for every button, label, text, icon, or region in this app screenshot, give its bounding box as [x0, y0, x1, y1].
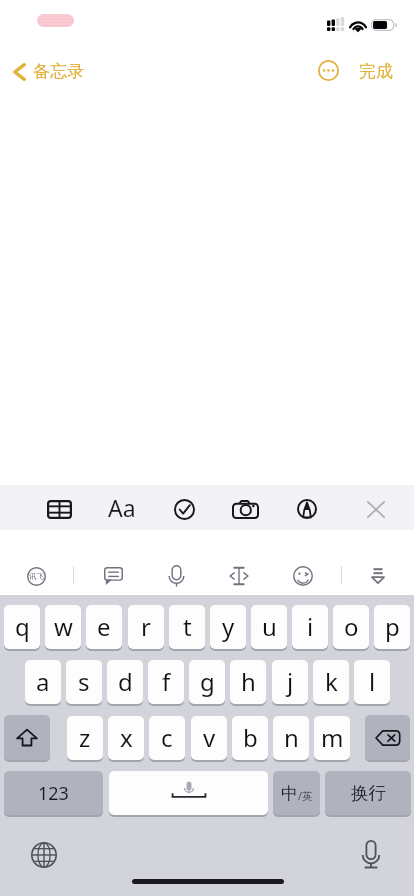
button[interactable]: z [67, 716, 103, 760]
staticText: Aa [108, 492, 136, 523]
staticText: k [325, 665, 338, 698]
button[interactable]: Hide keyboard [361, 559, 395, 593]
staticText: d [118, 665, 133, 698]
staticText: e [97, 610, 111, 643]
button[interactable]: Markup [289, 491, 325, 527]
staticText: j [287, 665, 294, 698]
staticText: a [36, 665, 50, 698]
button[interactable]: Chinese English toggle [273, 771, 320, 815]
staticText: o [344, 610, 359, 643]
staticText: u [262, 610, 277, 643]
staticText: l [369, 665, 376, 698]
button[interactable]: Move cursor [222, 559, 256, 593]
staticText: 123 [38, 781, 69, 806]
button[interactable]: q [4, 605, 40, 649]
button[interactable]: 完成 [355, 56, 397, 87]
button[interactable]: h [230, 660, 266, 704]
staticText: y [222, 610, 235, 643]
button[interactable]: Aa [104, 485, 140, 530]
button[interactable]: k [313, 660, 349, 704]
button[interactable]: Close keyboard [358, 491, 394, 527]
staticText: h [241, 665, 256, 698]
button[interactable]: s [66, 660, 102, 704]
button[interactable]: y [210, 605, 246, 649]
staticText: x [120, 721, 133, 754]
staticText: w [54, 610, 73, 643]
button[interactable]: c [149, 716, 185, 760]
button[interactable]: Emoji [286, 559, 320, 593]
button[interactable]: g [189, 660, 225, 704]
staticText: p [385, 610, 400, 643]
button[interactable]: Shift [4, 715, 50, 760]
staticText: n [284, 721, 299, 754]
button[interactable]: x [108, 716, 144, 760]
button[interactable]: r [128, 605, 164, 649]
button[interactable]: i [292, 605, 328, 649]
staticText: i [307, 610, 314, 643]
button[interactable]: Messages [96, 559, 130, 593]
button[interactable]: Space [109, 771, 268, 815]
button[interactable]: Camera [227, 491, 263, 527]
staticText: /英 [298, 789, 313, 803]
button[interactable]: 换行 [325, 771, 411, 815]
staticText: 完成 [359, 61, 393, 82]
button[interactable]: t [169, 605, 205, 649]
staticText: g [200, 665, 215, 698]
button[interactable]: b [232, 716, 268, 760]
staticText: b [243, 721, 258, 754]
staticText: 换行 [351, 782, 386, 804]
staticText: q [15, 610, 30, 643]
staticText: f [162, 665, 171, 698]
button[interactable]: Checklist [166, 491, 202, 527]
staticText: t [183, 610, 192, 643]
button[interactable]: Delete [365, 715, 410, 760]
button[interactable]: e [86, 605, 122, 649]
staticText: z [79, 721, 91, 754]
button[interactable]: n [273, 716, 309, 760]
staticText: v [203, 721, 216, 754]
button[interactable]: j [272, 660, 308, 704]
staticText: s [78, 665, 90, 698]
button[interactable]: 123 [4, 771, 103, 815]
button[interactable]: m [314, 716, 350, 760]
staticText: 中 [281, 783, 298, 804]
button[interactable]: Table [41, 491, 77, 527]
button[interactable]: w [45, 605, 81, 649]
button[interactable]: 备忘录 [9, 56, 88, 87]
button[interactable]: u [251, 605, 287, 649]
staticText: c [161, 721, 173, 754]
button[interactable]: o [333, 605, 369, 649]
button[interactable]: d [107, 660, 143, 704]
button[interactable]: a [25, 660, 61, 704]
button[interactable]: l [354, 660, 390, 704]
button[interactable]: f [148, 660, 184, 704]
button[interactable]: More options [312, 54, 344, 86]
staticText: m [321, 721, 344, 754]
button[interactable]: Voice input [350, 839, 391, 875]
button[interactable]: Switch keyboard [22, 842, 66, 886]
button[interactable]: Input method [19, 559, 53, 593]
staticText: 讯飞 [29, 572, 44, 581]
button[interactable]: Voice [159, 559, 193, 593]
button[interactable]: v [191, 716, 227, 760]
staticText: 备忘录 [33, 61, 84, 82]
button[interactable]: p [374, 605, 410, 649]
staticText: r [141, 610, 151, 643]
